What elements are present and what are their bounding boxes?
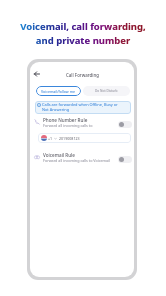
- staticText: Voicemail/follow me: [41, 89, 76, 94]
- staticText: +1: [48, 136, 53, 141]
- button[interactable]: Voicemail/follow me: [36, 86, 81, 96]
- staticText: 2019008123: [59, 136, 80, 141]
- button[interactable]: Voicemail Rule: [34, 152, 132, 165]
- staticText: Forward all incoming calls to Voicemail: [43, 158, 110, 163]
- button[interactable]: Toggle Voicemail Rule: [118, 156, 132, 163]
- button[interactable]: Phone Number Rule: [34, 117, 132, 130]
- button[interactable]: Do Not Disturb: [83, 86, 130, 96]
- button[interactable]: Toggle Phone Number Rule: [118, 121, 132, 128]
- staticText: Call Forwarding: [66, 72, 99, 78]
- staticText: Voicemail Rule: [43, 152, 75, 158]
- staticText: Calls are forwarded when Offline, Busy o…: [42, 102, 118, 112]
- button[interactable]: +1: [41, 133, 128, 143]
- button[interactable]: Back: [34, 71, 40, 77]
- staticText: Forward all incoming calls to: [43, 123, 93, 128]
- staticText: Phone Number Rule: [43, 117, 88, 123]
- staticText: Do Not Disturb: [95, 89, 118, 93]
- staticText: Voicemail, call forwarding, and private …: [0, 20, 166, 47]
